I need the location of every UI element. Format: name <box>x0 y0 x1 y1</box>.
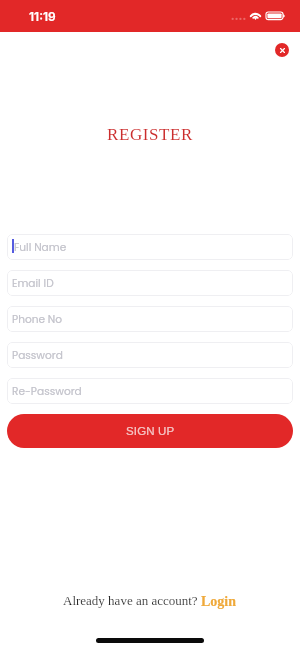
staticText: 11:19 <box>29 9 56 24</box>
staticText: REGISTER <box>0 125 300 144</box>
staticText: Password <box>12 348 63 363</box>
button[interactable]: Email ID <box>7 270 293 296</box>
staticText: Already have an account? <box>63 593 201 607</box>
staticText: Email ID <box>12 276 54 291</box>
staticText: SIGN UP <box>126 425 175 438</box>
button[interactable]: SIGN UP <box>7 414 293 448</box>
button[interactable]: Login <box>201 594 237 610</box>
button[interactable]: Phone No <box>7 306 293 332</box>
staticText: Phone No <box>12 312 63 327</box>
button[interactable]: Close <box>275 43 289 57</box>
button[interactable]: Password <box>7 342 293 368</box>
staticText: Re-Password <box>12 384 82 399</box>
staticText: Full Name <box>14 240 67 255</box>
button[interactable]: Full Name <box>7 234 293 260</box>
button[interactable]: Re-Password <box>7 378 293 404</box>
